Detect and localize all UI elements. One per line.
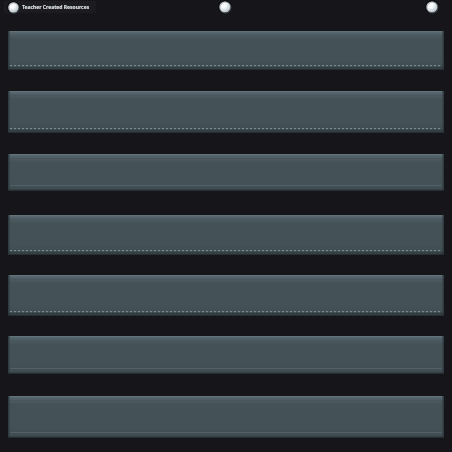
button[interactable] <box>8 154 444 191</box>
button[interactable]: Teacher Created Resources <box>4 1 96 13</box>
button[interactable] <box>8 215 444 255</box>
button[interactable] <box>8 396 444 438</box>
button[interactable]: Hanging grommet right <box>425 0 439 14</box>
button[interactable]: Hanging grommet center <box>218 0 232 14</box>
button[interactable] <box>8 91 444 133</box>
button[interactable] <box>8 336 444 374</box>
staticText: Teacher Created Resources <box>22 4 90 11</box>
button[interactable]: Hanging grommet left <box>7 1 20 14</box>
button[interactable] <box>8 31 444 70</box>
button[interactable] <box>8 275 444 316</box>
